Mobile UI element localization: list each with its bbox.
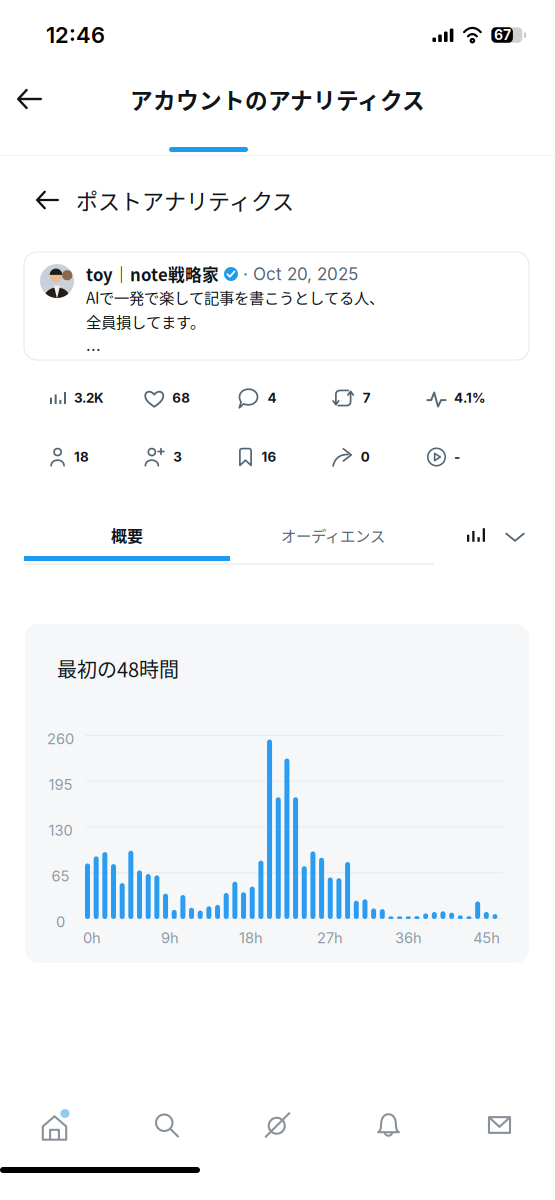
staticText: 68	[172, 390, 190, 406]
staticText: · Oct 20, 2025	[243, 264, 358, 284]
button[interactable]: 概要	[24, 514, 230, 556]
staticText: 27h	[317, 929, 343, 947]
button[interactable]: オーディエンス	[230, 514, 436, 556]
button[interactable]: 7	[333, 387, 427, 409]
button[interactable]: Grok	[222, 1100, 333, 1150]
button[interactable]: 4.1%	[427, 387, 521, 409]
button[interactable]: 4	[238, 387, 333, 409]
staticText: ...	[86, 335, 101, 355]
staticText: 16	[261, 449, 276, 465]
staticText: 45h	[473, 929, 500, 947]
button[interactable]: Back	[0, 77, 58, 121]
button[interactable]: Back	[18, 178, 76, 222]
button[interactable]: 3	[144, 446, 238, 468]
button[interactable]: 0	[333, 446, 427, 468]
staticText: 3.2K	[74, 390, 104, 406]
button[interactable]: 18	[50, 446, 144, 468]
staticText: 4.1%	[454, 390, 486, 406]
staticText: 0h	[83, 929, 101, 947]
staticText: 4	[267, 390, 276, 406]
staticText: 3	[173, 449, 182, 465]
staticText: toy｜note戦略家	[86, 262, 219, 286]
button[interactable]: Notifications	[333, 1100, 444, 1150]
staticText: ポストアナリティクス	[76, 184, 294, 216]
staticText: -	[454, 449, 460, 465]
button[interactable]: 16	[238, 446, 333, 468]
staticText: 0	[56, 913, 65, 931]
staticText: 12:46	[46, 22, 105, 48]
button[interactable]: Home	[0, 1100, 111, 1150]
staticText: 0	[361, 449, 370, 465]
staticText: 7	[363, 390, 371, 406]
button[interactable]: -	[427, 446, 521, 468]
staticText: 65	[51, 867, 69, 885]
staticText: アカウントのアナリティクス	[130, 83, 425, 115]
staticText: 130	[48, 821, 72, 839]
button[interactable]: Search	[111, 1100, 222, 1150]
staticText: 9h	[161, 929, 179, 947]
button[interactable]: Messages	[444, 1100, 555, 1150]
button[interactable]: 3.2K	[50, 387, 144, 409]
staticText: 全員損してます。	[86, 310, 205, 332]
staticText: 18	[74, 449, 89, 465]
staticText: 18h	[239, 929, 263, 947]
staticText: 36h	[395, 929, 422, 947]
button[interactable]: 68	[144, 387, 238, 409]
button[interactable]: Chart options	[467, 514, 525, 556]
staticText: 67	[494, 26, 511, 43]
staticText: 195	[48, 776, 72, 793]
staticText: 260	[47, 730, 74, 748]
staticText: AIで一発で楽して記事を書こうとしてる人、	[86, 286, 384, 308]
staticText: 概要	[111, 523, 143, 547]
staticText: 最初の48時間	[57, 654, 179, 683]
staticText: オーディエンス	[281, 524, 385, 546]
